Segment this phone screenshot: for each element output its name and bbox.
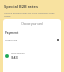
staticText: Special B2B rates bbox=[4, 4, 38, 9]
staticText: Total amount bbox=[11, 52, 25, 55]
staticText: Payment bbox=[5, 31, 19, 35]
staticText: $43 bbox=[11, 55, 18, 60]
staticText: Unlock private fares for your business t… bbox=[4, 11, 60, 17]
staticText: Choose your card bbox=[3, 22, 61, 26]
staticText: Credit card bbox=[5, 38, 18, 41]
